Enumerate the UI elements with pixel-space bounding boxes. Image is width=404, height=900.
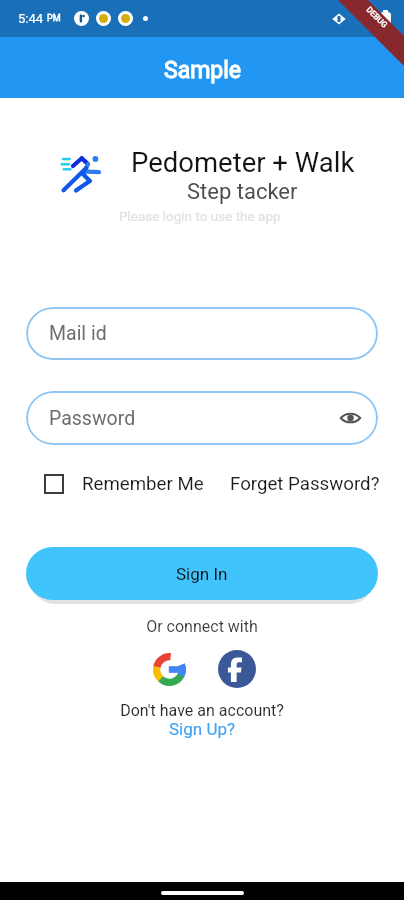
button[interactable]: Forget Password? — [224, 469, 386, 499]
button[interactable]: Sign in with Google — [151, 651, 188, 688]
staticText: Remember Me — [82, 473, 204, 495]
staticText: Step tacker — [187, 179, 298, 205]
staticText: Forget Password? — [230, 473, 380, 495]
staticText: Don't have an account? — [0, 701, 404, 720]
button[interactable]: Sign Up? — [169, 719, 235, 739]
staticText: Mail id — [49, 322, 107, 345]
button[interactable]: Sign in with Facebook — [218, 650, 256, 688]
button[interactable]: Remember Me — [38, 469, 210, 499]
staticText: Or connect with — [0, 617, 404, 636]
staticText: Password — [49, 407, 136, 430]
button[interactable]: Password — [26, 391, 378, 445]
button[interactable]: Mail id — [26, 307, 378, 360]
staticText: Please login to use the app — [119, 208, 281, 224]
staticText: DEBUG — [365, 5, 389, 30]
button[interactable]: Show password — [333, 401, 367, 435]
staticText: Sample — [164, 57, 242, 84]
staticText: PM — [47, 13, 61, 24]
staticText: Pedometer + Walk — [131, 146, 355, 178]
button[interactable]: Sign In — [26, 547, 378, 600]
staticText: 5:44 — [18, 11, 44, 26]
staticText: Sign In — [176, 564, 228, 584]
